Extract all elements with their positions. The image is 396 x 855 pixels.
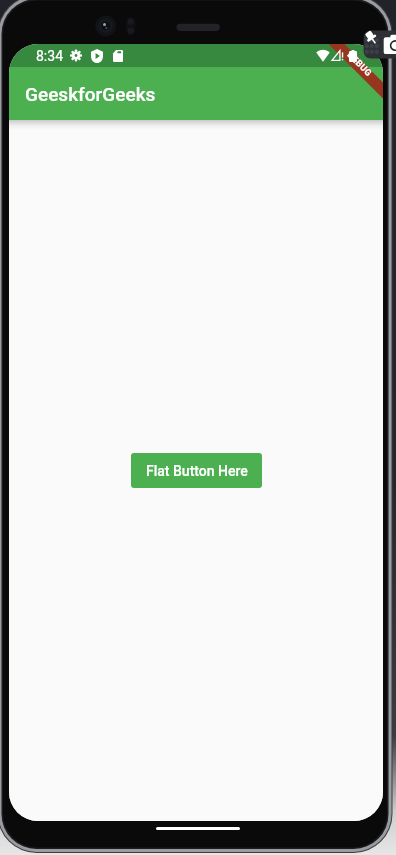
staticText: DEBUG [345, 50, 374, 79]
staticText: GeeskforGeeks [25, 83, 156, 105]
button[interactable]: Flat Button Here [131, 453, 262, 488]
staticText: Flat Button Here [146, 463, 248, 479]
staticText: 8:34 [36, 48, 63, 64]
